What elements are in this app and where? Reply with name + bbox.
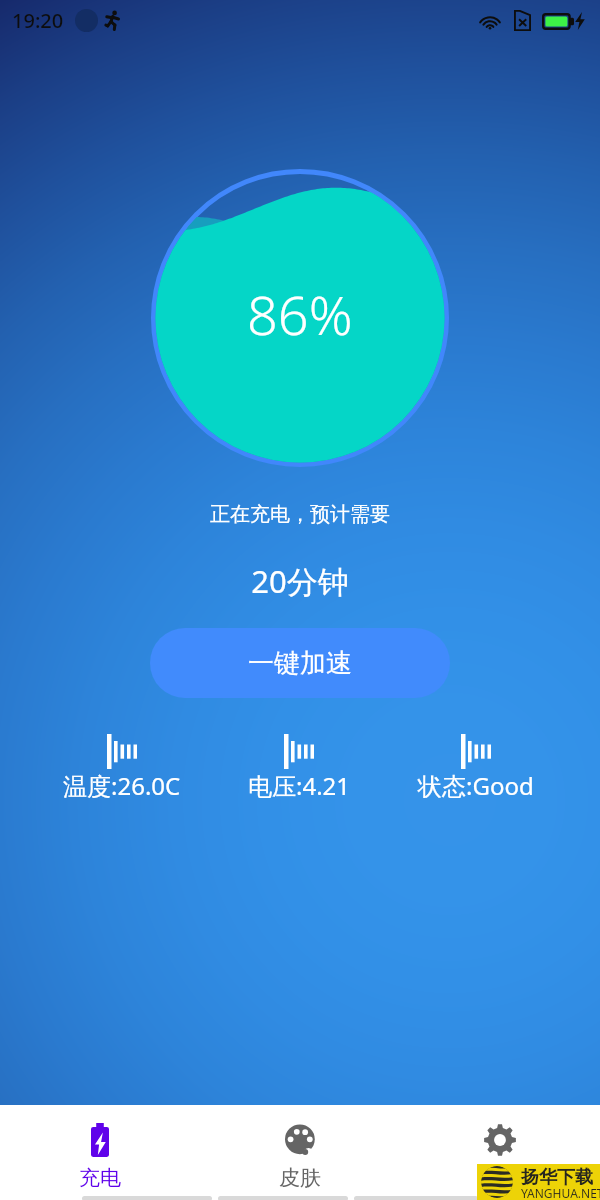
staticText: 19:20 bbox=[12, 7, 64, 34]
staticText: 温度:26.0C bbox=[63, 769, 181, 802]
staticText: 电压:4.21 bbox=[248, 769, 351, 802]
staticText: 20分钟 bbox=[251, 560, 349, 602]
staticText: 一键加速 bbox=[248, 647, 352, 680]
staticText: 充电 bbox=[79, 1165, 121, 1191]
staticText: 正在充电，预计需要 bbox=[210, 502, 390, 527]
button[interactable]: 一键加速 bbox=[150, 628, 450, 698]
staticText: 扬华下载 bbox=[521, 1166, 593, 1189]
button[interactable]: 设置 bbox=[400, 1105, 600, 1193]
button[interactable]: 充电 bbox=[0, 1105, 200, 1193]
staticText: YANGHUA.NET bbox=[521, 1185, 600, 1200]
staticText: 状态:Good bbox=[418, 769, 534, 802]
button[interactable]: 皮肤 bbox=[200, 1105, 400, 1193]
staticText: 设置 bbox=[479, 1165, 521, 1191]
staticText: 皮肤 bbox=[279, 1165, 321, 1191]
staticText: 86% bbox=[247, 277, 353, 351]
